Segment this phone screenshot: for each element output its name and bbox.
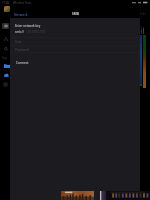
button[interactable]: Folder	[3, 63, 10, 69]
staticText: Wireless Tools	[13, 1, 32, 5]
button[interactable]: Account	[2, 81, 9, 88]
button[interactable]: Edit	[140, 12, 146, 16]
staticText: Imp	[2, 56, 8, 60]
button[interactable]: App icon	[4, 6, 10, 12]
button[interactable]: Server	[2, 23, 9, 29]
staticText: Connect	[16, 61, 29, 65]
button[interactable]: Password	[10, 46, 140, 53]
button[interactable]: Share	[2, 35, 9, 42]
staticText: 11:05	[2, 1, 10, 5]
button[interactable]: Connect	[10, 60, 140, 66]
button[interactable]: SMB	[72, 12, 79, 16]
staticText: smb://	[15, 30, 24, 34]
staticText: User	[15, 40, 22, 44]
staticText: Password	[15, 48, 29, 52]
button[interactable]: Network	[14, 12, 28, 16]
button[interactable]: Recent window three	[106, 191, 150, 200]
button[interactable]: Cloud	[3, 72, 10, 78]
button[interactable]: Recent window two	[100, 191, 106, 200]
button[interactable]: Search	[2, 45, 9, 52]
staticText: 192.168.0.100	[26, 30, 45, 34]
button[interactable]: Recent window one	[61, 191, 94, 200]
staticText: Enter network key	[15, 24, 41, 28]
